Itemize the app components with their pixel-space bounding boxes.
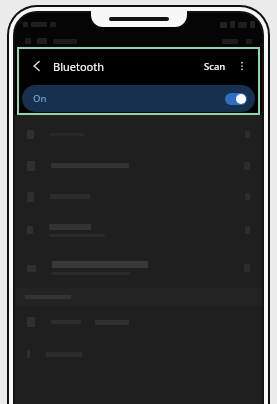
button[interactable]	[15, 212, 262, 248]
button[interactable]: On	[22, 85, 255, 112]
button[interactable]: More options	[234, 58, 250, 74]
button[interactable]	[15, 150, 262, 181]
button[interactable]	[15, 306, 262, 338]
staticText: Bluetooth	[53, 59, 105, 74]
staticText: Scan	[204, 60, 226, 73]
button[interactable]: Back	[27, 56, 47, 76]
button[interactable]	[15, 248, 262, 288]
button[interactable]: Scan	[201, 57, 229, 76]
staticText: On	[33, 92, 47, 105]
